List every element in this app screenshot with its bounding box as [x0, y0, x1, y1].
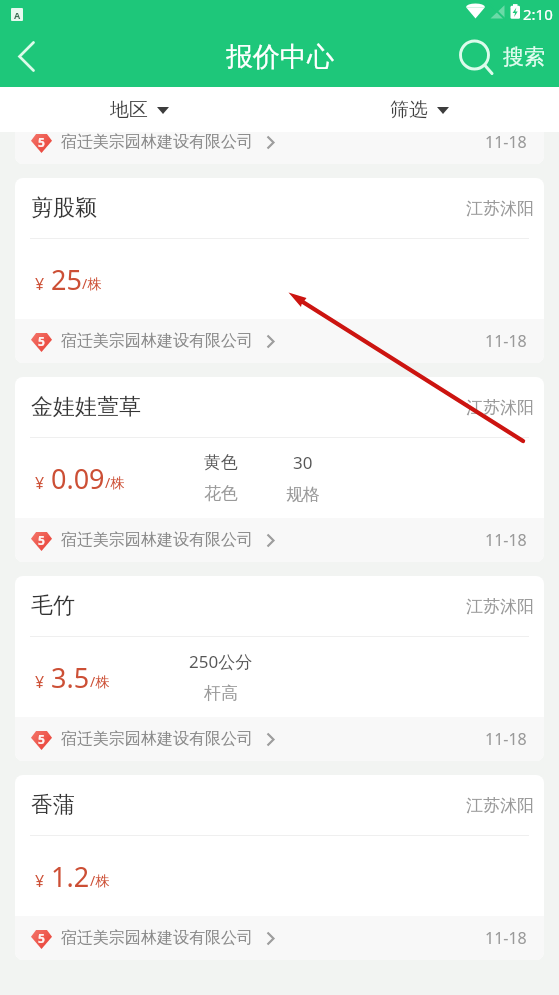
button[interactable]: 5 [15, 319, 544, 363]
button[interactable]: 筛选 [279, 87, 559, 132]
staticText: 5 [38, 930, 45, 946]
staticText: 花色 [204, 483, 238, 504]
staticText: 香蒲 [31, 791, 466, 819]
staticText: 5 [38, 731, 45, 747]
staticText: 江苏沭阳 [466, 397, 534, 418]
staticText: 毛竹 [31, 592, 466, 620]
button[interactable]: 毛竹 [15, 576, 544, 761]
button[interactable]: 5 [15, 132, 544, 164]
button[interactable]: 地区 [0, 87, 279, 132]
button[interactable]: 搜索 [453, 33, 559, 83]
button[interactable]: 5 [15, 916, 544, 960]
staticText: ¥ [35, 870, 45, 892]
staticText: 5 [38, 134, 45, 150]
staticText: 宿迁美宗园林建设有限公司 [61, 928, 253, 948]
staticText: 250公分 [189, 650, 253, 673]
staticText: 江苏沭阳 [466, 795, 534, 816]
staticText: 11-18 [485, 529, 527, 551]
staticText: 11-18 [485, 132, 527, 153]
staticText: 报价中心 [226, 40, 334, 74]
staticText: 剪股颖 [31, 194, 466, 222]
staticText: 11-18 [485, 728, 527, 750]
staticText: 宿迁美宗园林建设有限公司 [61, 729, 253, 749]
staticText: 3.5 [51, 659, 90, 696]
staticText: /株 [82, 274, 102, 293]
staticText: 2:10 [523, 4, 553, 24]
staticText: 11-18 [485, 330, 527, 352]
staticText: 搜索 [503, 44, 545, 70]
staticText: A [14, 9, 21, 21]
button[interactable]: 剪股颖 [15, 178, 544, 363]
button[interactable]: 藤本月季 [15, 132, 544, 164]
staticText: /株 [105, 473, 125, 492]
staticText: 规格 [286, 484, 320, 505]
staticText: 1.2 [51, 858, 90, 895]
staticText: 25 [51, 261, 82, 298]
staticText: /株 [90, 672, 110, 691]
button[interactable]: 金娃娃萱草 [15, 377, 544, 562]
button[interactable]: 5 [15, 518, 544, 562]
staticText: 11-18 [485, 927, 527, 949]
staticText: 0.09 [51, 460, 105, 497]
staticText: 5 [38, 333, 45, 349]
staticText: 黄色 [204, 452, 238, 473]
staticText: 30 [293, 451, 313, 474]
button[interactable]: 香蒲 [15, 775, 544, 960]
staticText: 江苏沭阳 [466, 198, 534, 219]
staticText: 5 [38, 532, 45, 548]
staticText: 地区 [110, 98, 148, 122]
staticText: ¥ [35, 671, 45, 693]
staticText: /株 [90, 871, 110, 890]
staticText: ¥ [35, 273, 45, 295]
staticText: 宿迁美宗园林建设有限公司 [61, 530, 253, 550]
staticText: 金娃娃萱草 [31, 393, 466, 421]
button[interactable]: 5 [15, 717, 544, 761]
staticText: ¥ [35, 472, 45, 494]
staticText: 杆高 [204, 683, 238, 704]
staticText: 宿迁美宗园林建设有限公司 [61, 132, 253, 152]
staticText: 宿迁美宗园林建设有限公司 [61, 331, 253, 351]
staticText: 筛选 [390, 98, 428, 122]
staticText: 江苏沭阳 [466, 596, 534, 617]
button[interactable]: Back [0, 32, 52, 84]
